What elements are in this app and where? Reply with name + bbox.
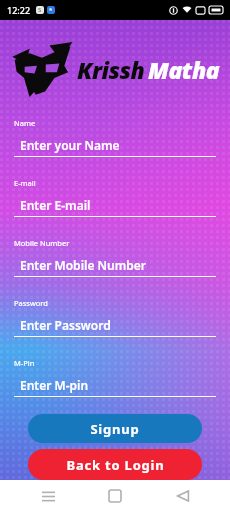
staticText: Enter Password (20, 317, 111, 333)
staticText: E-mail (14, 178, 36, 188)
staticText: Name (14, 118, 36, 128)
button[interactable]: Back to Login (28, 449, 202, 480)
staticText: M-Pin (14, 358, 35, 368)
button[interactable]: Signup (28, 414, 202, 443)
button[interactable]: Name (14, 118, 216, 178)
staticText: 12:22 (7, 4, 31, 16)
staticText: Signup (90, 420, 140, 438)
button[interactable]: Mobile Number (14, 238, 216, 298)
staticText: Password (14, 298, 48, 308)
button[interactable]: M-Pin (14, 358, 216, 418)
staticText: Enter your Name (20, 137, 120, 153)
staticText: Matha (148, 54, 220, 85)
staticText: Enter E-mail (20, 197, 91, 213)
button[interactable]: Password (14, 298, 216, 358)
staticText: Enter Mobile Number (20, 257, 147, 273)
button[interactable]: Home (95, 480, 135, 512)
staticText: S (38, 6, 42, 14)
button[interactable]: E-mail (14, 178, 216, 238)
staticText: Krissh (77, 54, 145, 85)
staticText: Back to Login (66, 456, 165, 474)
button[interactable]: Recents (28, 480, 68, 512)
staticText: * (49, 6, 53, 14)
staticText: Mobile Number (14, 238, 70, 248)
staticText: Enter M-pin (20, 377, 89, 393)
button[interactable]: Back (163, 480, 203, 512)
